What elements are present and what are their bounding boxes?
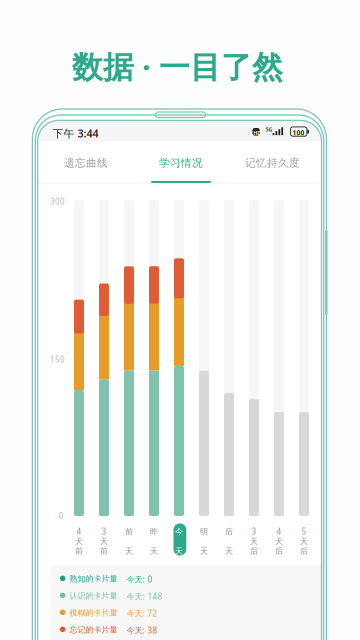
button[interactable]: 记忆持久度 (0, 0, 360, 640)
staticText: 天 (150, 546, 158, 556)
staticText: 天 (75, 536, 83, 546)
staticText: 天 (175, 546, 183, 556)
staticText: 忘记的卡片量 (69, 625, 117, 635)
staticText: 天 (300, 536, 308, 546)
button[interactable]: 遗忘曲线 (0, 0, 360, 640)
staticText: 0 (59, 510, 64, 521)
staticText: 数据 · 一目了然 (72, 46, 283, 87)
staticText: 明 (200, 527, 208, 536)
staticText: 学习情况 (159, 156, 203, 169)
staticText: 后 (300, 546, 308, 556)
staticText: 记忆持久度 (245, 156, 300, 169)
staticText: 前 (125, 527, 133, 536)
staticText: 天 (100, 536, 108, 546)
staticText: 3 (101, 526, 106, 537)
staticText: 5G (266, 126, 273, 133)
staticText: 4 (276, 526, 281, 537)
staticText: 后 (275, 546, 283, 556)
staticText: 300 (50, 196, 65, 207)
staticText: 今天: (126, 625, 144, 636)
button[interactable]: 学习情况 (0, 0, 360, 640)
staticText: 今天: (126, 574, 144, 585)
staticText: 今天: (126, 608, 144, 619)
staticText: 3 (251, 526, 256, 537)
staticText: 下午 3:44 (53, 126, 99, 140)
staticText: 4 (76, 526, 81, 537)
staticText: 熟知的卡片量 (69, 574, 117, 584)
staticText: 148 (147, 591, 162, 602)
staticText: 5 (301, 526, 306, 537)
staticText: 38 (147, 625, 157, 636)
staticText: 认识的卡片量 (69, 591, 117, 601)
staticText: HD (253, 129, 261, 136)
staticText: 遗忘曲线 (64, 156, 108, 169)
staticText: 150 (50, 354, 65, 365)
staticText: 100 (293, 128, 305, 137)
staticText: 天 (125, 546, 133, 556)
staticText: 天 (275, 536, 283, 546)
staticText: 天 (225, 546, 233, 556)
staticText: 今天: (126, 591, 144, 602)
staticText: 前 (75, 546, 83, 556)
staticText: 天 (250, 536, 258, 546)
staticText: 昨 (150, 527, 158, 536)
staticText: 0 (147, 574, 152, 585)
staticText: 今 (175, 527, 183, 536)
staticText: 后 (225, 527, 233, 536)
staticText: 72 (147, 608, 157, 619)
staticText: 后 (250, 546, 258, 556)
staticText: 前 (100, 546, 108, 556)
staticText: 模糊的卡片量 (69, 608, 117, 618)
staticText: 天 (200, 546, 208, 556)
